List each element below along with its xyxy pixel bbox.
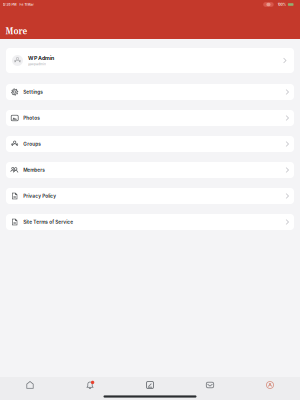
staticText: 100% <box>278 2 286 6</box>
button[interactable]: WP Admin <box>6 48 294 73</box>
button[interactable]: Site Terms of Service <box>6 214 294 230</box>
button[interactable]: Create <box>120 377 180 393</box>
staticText: @wpadmin <box>28 62 46 66</box>
staticText: WP Admin <box>28 55 54 61</box>
staticText: Members <box>23 167 45 173</box>
button[interactable]: Reader <box>180 377 240 393</box>
staticText: Photos <box>23 115 40 121</box>
staticText: 12:28 PM Fri 11 Mar <box>3 2 34 6</box>
staticText: Groups <box>23 141 41 147</box>
button[interactable]: More <box>240 377 300 393</box>
staticText: Privacy Policy <box>23 193 56 199</box>
button[interactable]: Photos <box>6 110 294 126</box>
button[interactable]: Groups <box>6 136 294 152</box>
staticText: Site Terms of Service <box>23 219 73 225</box>
button[interactable]: Settings <box>6 84 294 100</box>
button[interactable]: Members <box>6 162 294 178</box>
button[interactable]: My Site <box>0 377 60 393</box>
button[interactable]: Notifications <box>60 377 120 393</box>
staticText: Settings <box>23 89 43 95</box>
button[interactable]: Privacy Policy <box>6 188 294 204</box>
staticText: More <box>6 25 28 37</box>
